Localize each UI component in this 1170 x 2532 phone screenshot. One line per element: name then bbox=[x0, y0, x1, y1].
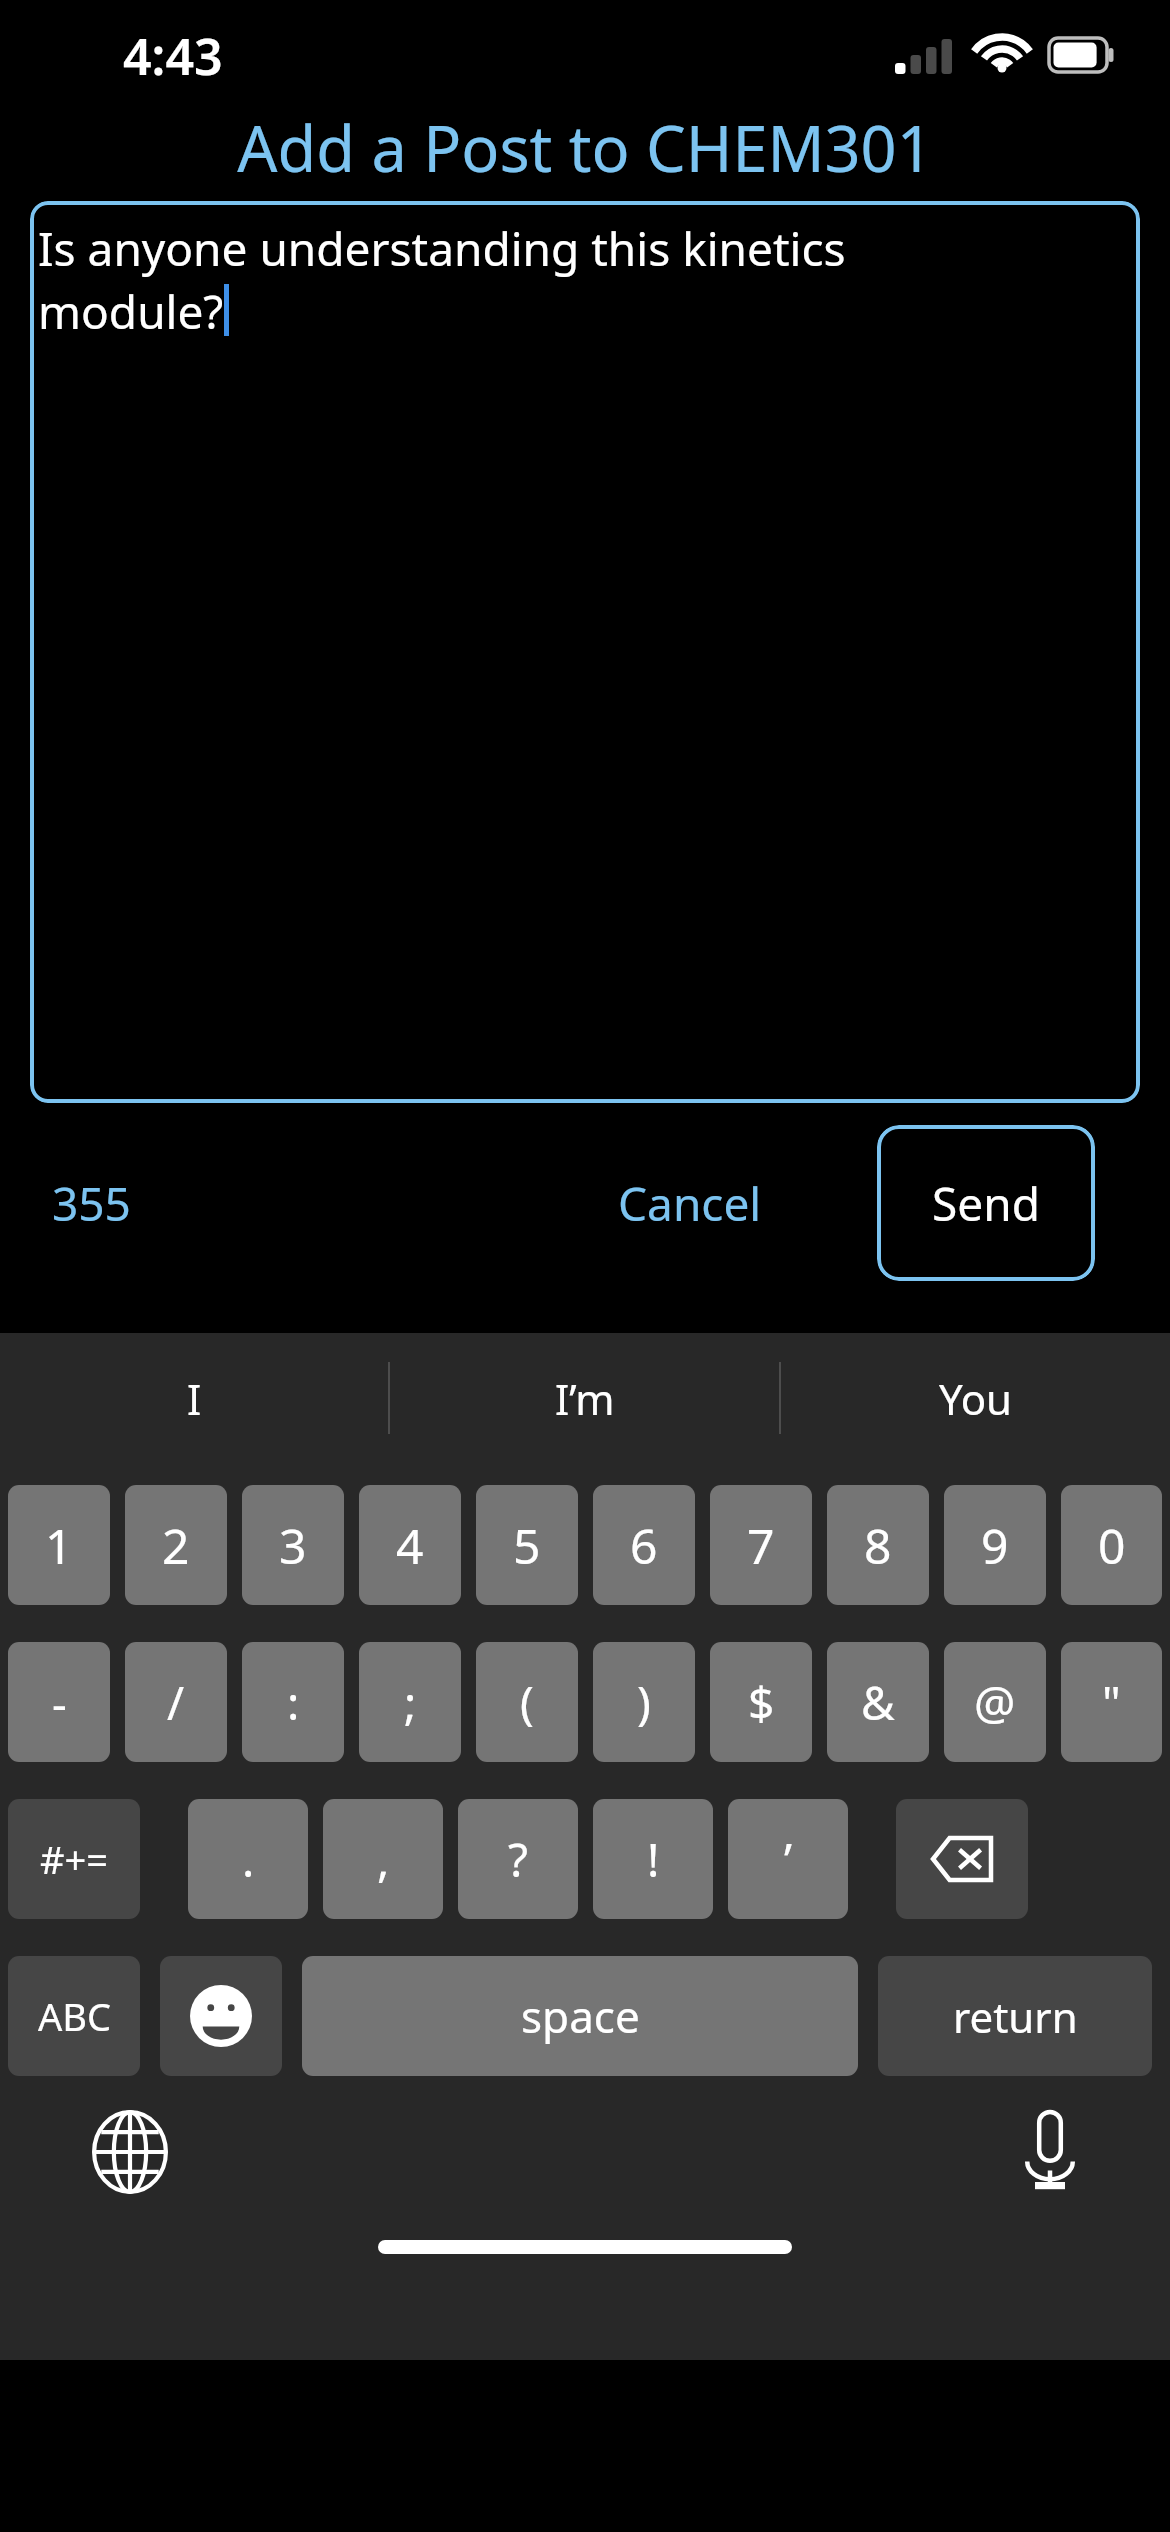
staticText: space bbox=[521, 1986, 640, 2046]
button[interactable]: 5 bbox=[476, 1485, 578, 1605]
button[interactable]: ’ bbox=[728, 1799, 848, 1919]
staticText: 6 bbox=[630, 1513, 658, 1578]
staticText: $ bbox=[748, 1671, 775, 1734]
button[interactable]: ? bbox=[458, 1799, 578, 1919]
button[interactable]: 4 bbox=[359, 1485, 461, 1605]
staticText: I bbox=[187, 1370, 202, 1427]
button[interactable]: 355 bbox=[52, 1172, 131, 1235]
button[interactable]: ABC bbox=[8, 1956, 140, 2076]
staticText: @ bbox=[974, 1671, 1016, 1734]
button[interactable]: I’m bbox=[390, 1333, 779, 1463]
staticText: return bbox=[953, 1988, 1078, 2045]
staticText: 7 bbox=[747, 1513, 775, 1578]
button[interactable]: Send bbox=[877, 1125, 1095, 1281]
staticText: , bbox=[377, 1828, 390, 1891]
button[interactable]: 8 bbox=[827, 1485, 929, 1605]
button[interactable]: $ bbox=[710, 1642, 812, 1762]
button[interactable]: #+= bbox=[8, 1799, 140, 1919]
staticText: 4:43 bbox=[123, 22, 223, 90]
staticText: " bbox=[1102, 1671, 1121, 1734]
button[interactable]: 9 bbox=[944, 1485, 1046, 1605]
button[interactable]: / bbox=[125, 1642, 227, 1762]
staticText: 2 bbox=[162, 1513, 190, 1578]
button[interactable]: Change keyboard bbox=[88, 2110, 172, 2194]
button[interactable]: 6 bbox=[593, 1485, 695, 1605]
button[interactable]: Backspace bbox=[896, 1799, 1028, 1919]
staticText: 1 bbox=[45, 1513, 73, 1578]
staticText: Is anyone understanding this kinetics bbox=[38, 217, 846, 280]
staticText: Add a Post to CHEM301 bbox=[237, 105, 933, 191]
button[interactable]: ; bbox=[359, 1642, 461, 1762]
button[interactable]: return bbox=[878, 1956, 1152, 2076]
button[interactable]: 2 bbox=[125, 1485, 227, 1605]
button[interactable]: I bbox=[0, 1333, 388, 1463]
staticText: ; bbox=[404, 1671, 417, 1734]
button[interactable]: : bbox=[242, 1642, 344, 1762]
button[interactable]: Cancel bbox=[618, 1172, 762, 1235]
staticText: Send bbox=[932, 1172, 1040, 1235]
staticText: ’ bbox=[784, 1828, 793, 1891]
staticText: ABC bbox=[38, 1990, 111, 2042]
staticText: : bbox=[287, 1671, 300, 1734]
button[interactable]: , bbox=[323, 1799, 443, 1919]
button[interactable]: @ bbox=[944, 1642, 1046, 1762]
staticText: ! bbox=[647, 1828, 660, 1891]
staticText: 8 bbox=[864, 1513, 892, 1578]
button[interactable]: ) bbox=[593, 1642, 695, 1762]
staticText: You bbox=[939, 1370, 1013, 1427]
button[interactable]: You bbox=[781, 1333, 1170, 1463]
staticText: 3 bbox=[279, 1513, 307, 1578]
staticText: 5 bbox=[513, 1513, 541, 1578]
staticText: module? bbox=[38, 280, 224, 343]
staticText: 9 bbox=[981, 1513, 1009, 1578]
button[interactable]: 7 bbox=[710, 1485, 812, 1605]
button[interactable]: 1 bbox=[8, 1485, 110, 1605]
button[interactable]: 0 bbox=[1061, 1485, 1162, 1605]
staticText: 0 bbox=[1098, 1513, 1126, 1578]
button[interactable]: 3 bbox=[242, 1485, 344, 1605]
staticText: ) bbox=[637, 1671, 651, 1734]
staticText: ? bbox=[508, 1828, 528, 1891]
button[interactable]: space bbox=[302, 1956, 858, 2076]
button[interactable]: - bbox=[8, 1642, 110, 1762]
staticText: & bbox=[861, 1671, 895, 1734]
staticText: I’m bbox=[555, 1370, 615, 1427]
staticText: - bbox=[52, 1671, 67, 1734]
staticText: . bbox=[242, 1828, 255, 1891]
button[interactable]: . bbox=[188, 1799, 308, 1919]
button[interactable]: Dictation bbox=[1008, 2110, 1092, 2194]
button[interactable]: ( bbox=[476, 1642, 578, 1762]
button[interactable]: Emoji bbox=[160, 1956, 282, 2076]
button[interactable]: " bbox=[1061, 1642, 1162, 1762]
button[interactable]: & bbox=[827, 1642, 929, 1762]
button[interactable]: ! bbox=[593, 1799, 713, 1919]
staticText: #+= bbox=[40, 1833, 109, 1885]
staticText: 4 bbox=[396, 1513, 424, 1578]
staticText: / bbox=[167, 1671, 185, 1734]
button[interactable]: Is anyone understanding this kinetics bbox=[30, 201, 1140, 1103]
staticText: ( bbox=[520, 1671, 534, 1734]
